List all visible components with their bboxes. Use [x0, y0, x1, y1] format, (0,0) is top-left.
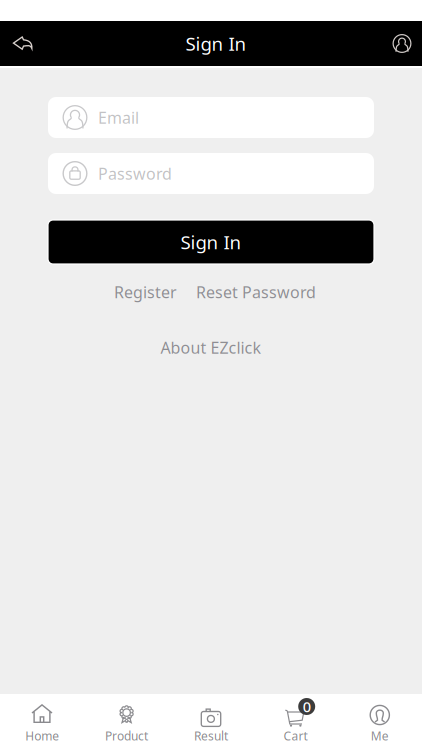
staticText: Password [98, 163, 172, 184]
staticText: Product [105, 728, 148, 744]
staticText: Me [371, 728, 389, 744]
staticText: 0 [303, 697, 311, 716]
staticText: Reset Password [196, 281, 316, 303]
button[interactable]: Me [338, 694, 422, 750]
button[interactable]: Register [114, 281, 177, 303]
staticText: Sign In [185, 31, 246, 56]
button[interactable]: Result [169, 694, 253, 750]
staticText: Cart [283, 728, 307, 744]
button[interactable]: 0 [253, 694, 338, 750]
button[interactable]: Sign In [48, 220, 374, 264]
button[interactable]: About EZclick [160, 337, 261, 358]
button[interactable]: Reset Password [196, 281, 316, 303]
staticText: Email [98, 107, 139, 128]
button[interactable]: Back [0, 21, 46, 66]
button[interactable]: Home [0, 694, 84, 750]
staticText: Home [25, 728, 59, 744]
button[interactable]: Product [84, 694, 169, 750]
staticText: Result [194, 728, 228, 744]
staticText: Sign In [180, 230, 241, 254]
button[interactable]: Account [382, 21, 422, 66]
staticText: Register [114, 281, 177, 303]
staticText: About EZclick [160, 337, 261, 358]
